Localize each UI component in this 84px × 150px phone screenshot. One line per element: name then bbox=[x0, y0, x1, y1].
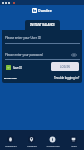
staticText: Locations bbox=[27, 145, 37, 148]
button[interactable]: Account Info bbox=[42, 133, 63, 148]
button[interactable]: Trouble logging in? bbox=[54, 76, 80, 80]
staticText: Dundee bbox=[38, 8, 52, 13]
staticText: INSTANT BALANCE bbox=[30, 23, 55, 27]
button[interactable]: Fingerprint bbox=[0, 133, 21, 148]
staticText: Please enter your User ID bbox=[5, 36, 41, 40]
staticText: More bbox=[71, 145, 77, 148]
staticText: Account Info bbox=[46, 145, 60, 148]
button[interactable]: Save ID bbox=[6, 65, 23, 70]
staticText: Fingerprint bbox=[5, 145, 17, 148]
other: Show password bbox=[71, 52, 77, 58]
button[interactable]: LOG IN bbox=[51, 62, 79, 71]
button[interactable]: More bbox=[63, 133, 84, 148]
staticText: Save ID bbox=[13, 66, 23, 70]
button[interactable]: INSTANT BALANCE bbox=[25, 20, 60, 30]
staticText: Please enter your password bbox=[5, 53, 43, 57]
button[interactable]: Enroll now bbox=[4, 76, 17, 79]
button[interactable]: Locations bbox=[21, 133, 42, 148]
staticText: LOG IN bbox=[60, 65, 70, 69]
